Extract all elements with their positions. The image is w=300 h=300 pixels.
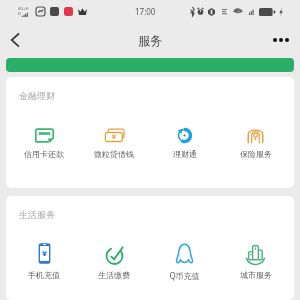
button[interactable]: 城市服务 [220,243,291,280]
button[interactable]: 手机充值 [9,243,79,280]
staticText: 4G+HD [18,6,31,16]
staticText: 城市服务 [240,270,272,280]
button[interactable]: More options [269,28,293,52]
button[interactable]: 保险服务 [220,128,291,159]
staticText: Q币充值 [169,270,200,281]
staticText: 手机充值 [28,270,60,280]
button[interactable]: Back [3,28,27,52]
button[interactable]: 理财通 [149,128,220,159]
staticText: 生活服务 [19,209,55,220]
button[interactable]: 微粒贷借钱 [79,128,149,159]
staticText: 服务 [138,33,162,48]
button[interactable]: 信用卡还款 [9,128,79,159]
button[interactable]: Q币充值 [149,243,220,281]
staticText: 保险服务 [240,149,272,159]
staticText: 17:00 [135,6,156,17]
staticText: 微粒贷借钱 [94,149,134,159]
staticText: 金融理财 [19,90,55,101]
staticText: 理财通 [173,149,197,159]
staticText: 信用卡还款 [24,149,64,159]
button[interactable]: 生活缴费 [79,243,149,280]
staticText: 生活缴费 [98,270,130,280]
